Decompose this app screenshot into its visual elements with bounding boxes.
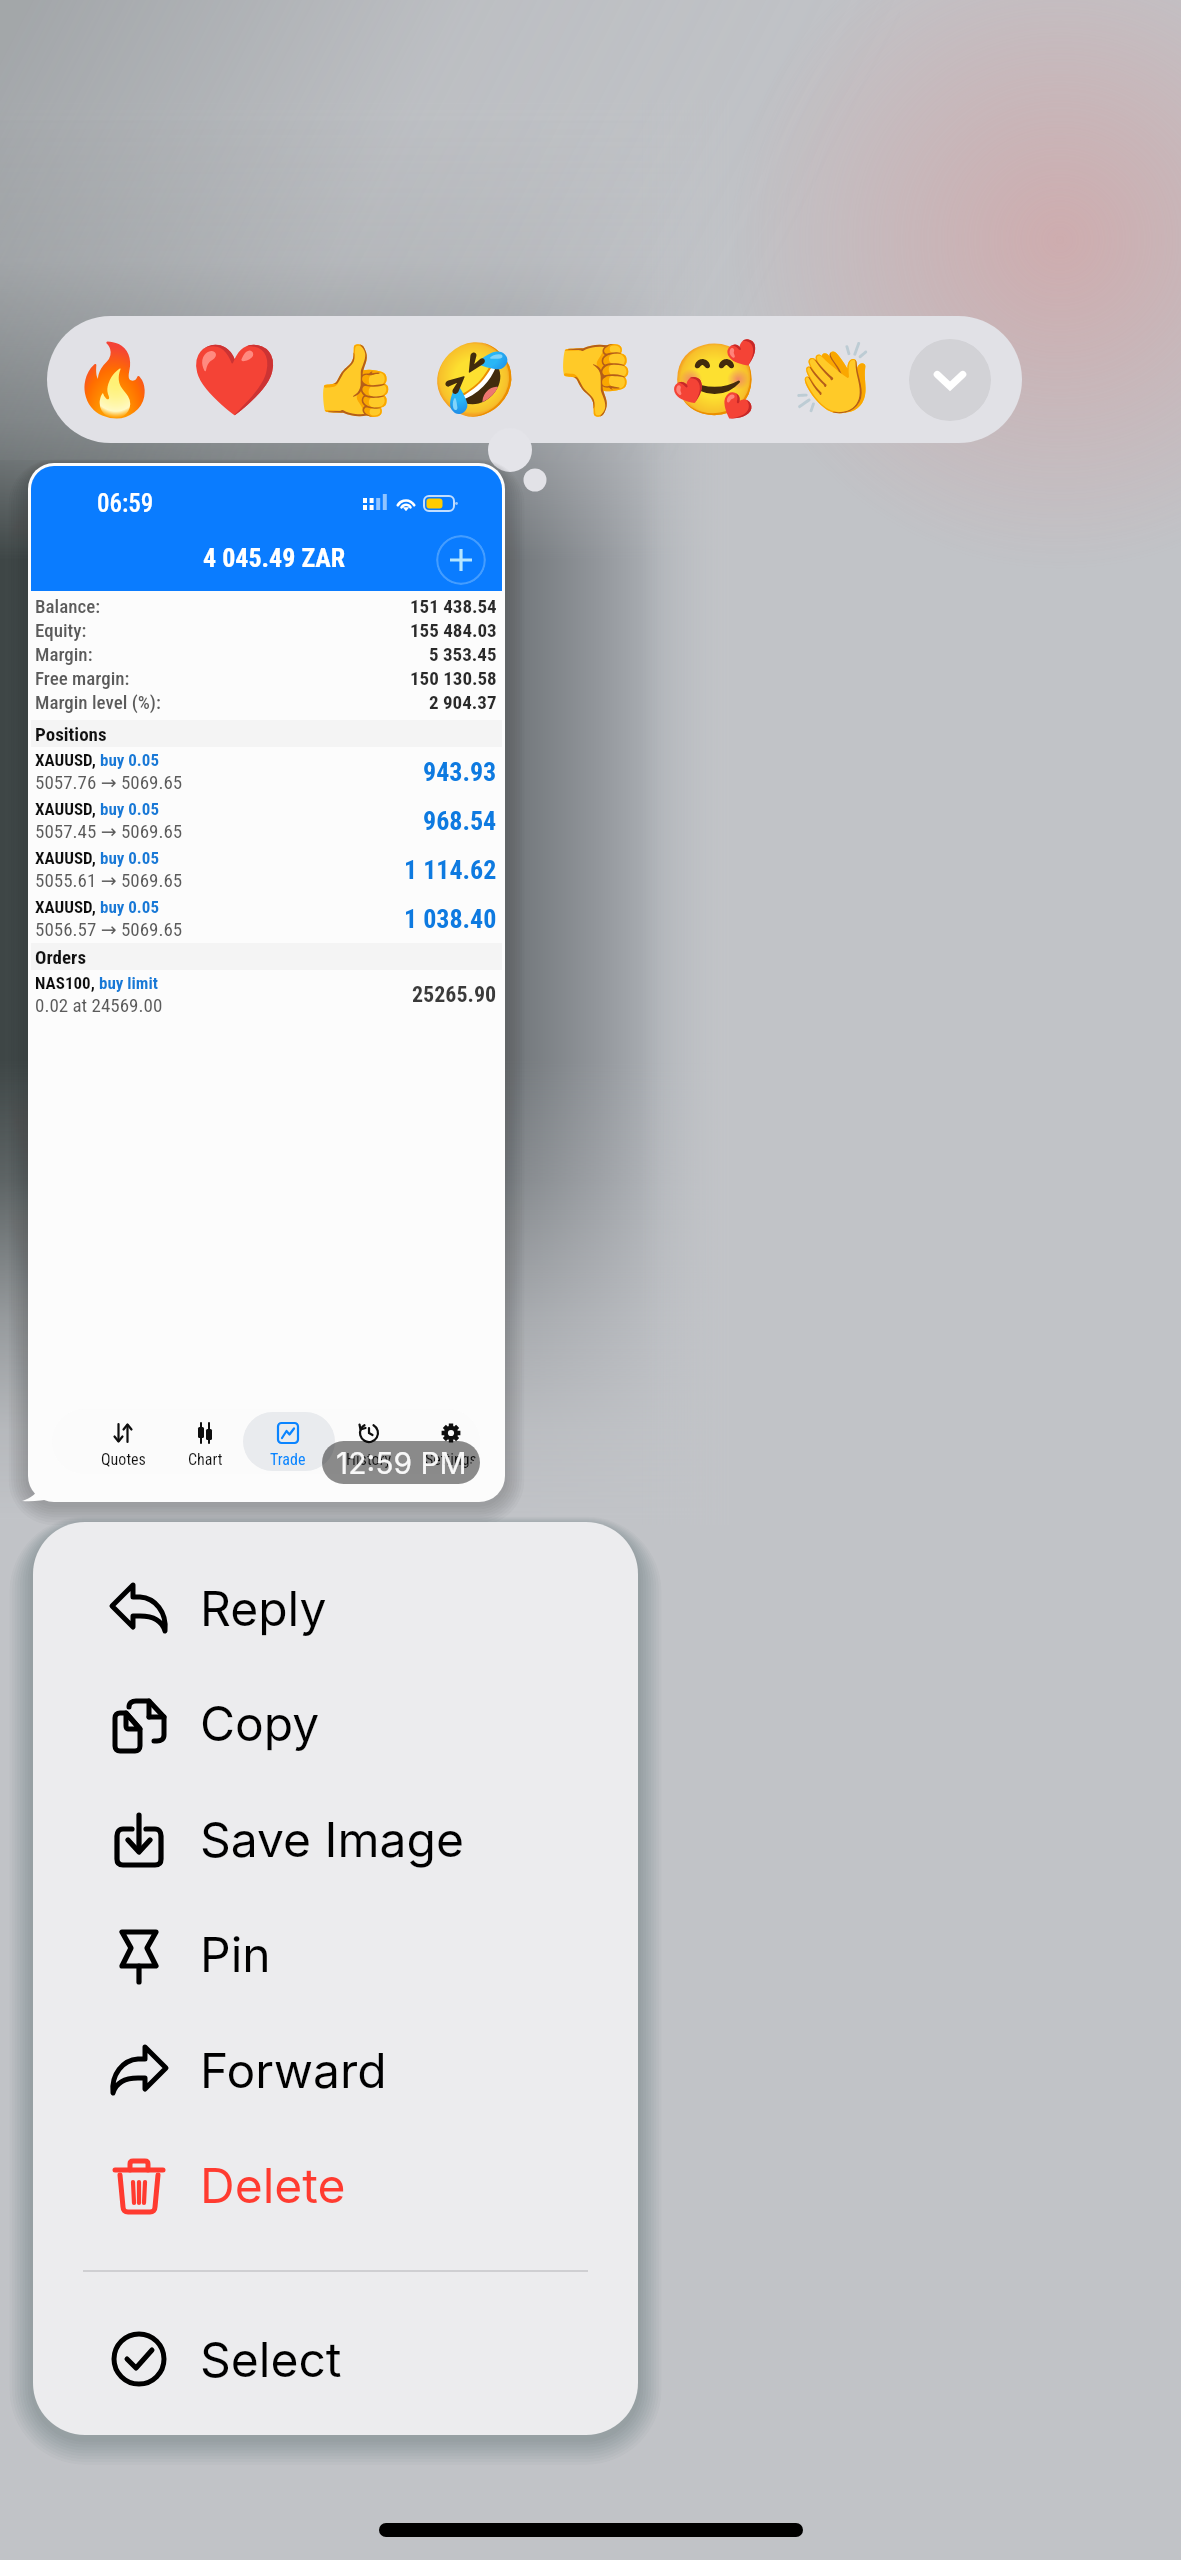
- staticText: Equity:: [35, 619, 87, 641]
- button[interactable]: Pin: [33, 1904, 638, 2004]
- staticText: 25265.90: [412, 982, 497, 1008]
- staticText: 1 038.40: [404, 904, 497, 934]
- staticText: History: [346, 1450, 392, 1469]
- staticText: 🔥: [71, 339, 159, 421]
- button[interactable]: ❤: [189, 334, 281, 426]
- staticText: 12:59 PM: [336, 1445, 467, 1481]
- staticText: 968.54: [423, 806, 497, 836]
- staticText: Margin:: [35, 643, 93, 665]
- staticText: 5057.45 → 5069.65: [35, 820, 183, 842]
- staticText: 5057.76 → 5069.65: [35, 771, 183, 793]
- staticText: XAUUSD,: [35, 750, 96, 770]
- staticText: Positions: [35, 723, 107, 745]
- staticText: Quotes: [101, 1450, 146, 1469]
- staticText: 5055.61 → 5069.65: [35, 869, 183, 891]
- button[interactable]: XAUUSD,: [31, 796, 502, 845]
- button[interactable]: Delete: [33, 2135, 638, 2235]
- button[interactable]: Forward: [33, 2020, 638, 2120]
- staticText: 👎: [551, 339, 639, 421]
- button[interactable]: Close reactions: [909, 339, 991, 421]
- staticText: Pin: [200, 1925, 271, 1983]
- staticText: Trade: [270, 1450, 306, 1469]
- staticText: XAUUSD,: [35, 848, 96, 868]
- button[interactable]: 👍: [309, 334, 401, 426]
- staticText: buy 0.05: [100, 897, 159, 917]
- staticText: 4 045.49 ZAR: [203, 543, 346, 573]
- button[interactable]: Select: [33, 2309, 638, 2409]
- staticText: Save Image: [200, 1810, 464, 1868]
- button[interactable]: 👎: [549, 334, 641, 426]
- staticText: Reply: [200, 1579, 327, 1637]
- staticText: 943.93: [423, 757, 497, 787]
- staticText: NAS100,: [35, 973, 95, 993]
- staticText: buy 0.05: [100, 750, 159, 770]
- staticText: 150 130.58: [410, 667, 497, 689]
- button[interactable]: History: [329, 1412, 409, 1471]
- staticText: Forward: [200, 2041, 387, 2099]
- staticText: 2 904.37: [429, 691, 497, 713]
- button[interactable]: 🤣: [429, 334, 521, 426]
- staticText: 1 114.62: [404, 855, 497, 885]
- button[interactable]: Settings: [411, 1412, 480, 1471]
- staticText: 0.02 at 24569.00: [35, 994, 163, 1016]
- button[interactable]: 🥰: [669, 334, 761, 426]
- button[interactable]: New order: [436, 535, 486, 585]
- button[interactable]: 🔥: [69, 334, 161, 426]
- button[interactable]: XAUUSD,: [31, 747, 502, 796]
- staticText: Margin level (%):: [35, 691, 161, 713]
- button[interactable]: XAUUSD,: [31, 894, 502, 943]
- button[interactable]: Copy: [33, 1673, 638, 1773]
- staticText: 155 484.03: [410, 619, 497, 641]
- button[interactable]: 👏: [789, 334, 881, 426]
- staticText: 151 438.54: [410, 595, 497, 617]
- staticText: Copy: [200, 1694, 320, 1752]
- staticText: 👍: [311, 339, 399, 421]
- staticText: 5 353.45: [429, 643, 497, 665]
- staticText: Free margin:: [35, 667, 130, 689]
- staticText: Balance:: [35, 595, 101, 617]
- staticText: Select: [200, 2330, 342, 2388]
- button[interactable]: 06:59: [28, 463, 505, 1502]
- staticText: Settings: [425, 1450, 477, 1469]
- staticText: buy 0.05: [100, 848, 159, 868]
- button[interactable]: XAUUSD,: [31, 845, 502, 894]
- button[interactable]: Chart: [165, 1412, 245, 1471]
- button[interactable]: NAS100,: [31, 970, 502, 1019]
- button[interactable]: Quotes: [83, 1412, 163, 1471]
- staticText: ❤: [191, 339, 279, 421]
- staticText: Delete: [200, 2156, 346, 2214]
- staticText: 06:59: [97, 489, 154, 518]
- button[interactable]: Trade: [248, 1412, 328, 1471]
- staticText: Chart: [188, 1450, 223, 1469]
- staticText: buy limit: [99, 973, 158, 993]
- staticText: 5056.57 → 5069.65: [35, 918, 183, 940]
- staticText: XAUUSD,: [35, 799, 96, 819]
- button[interactable]: Save Image: [33, 1789, 638, 1889]
- staticText: XAUUSD,: [35, 897, 96, 917]
- staticText: 👏: [791, 339, 879, 421]
- staticText: buy 0.05: [100, 799, 159, 819]
- staticText: 🤣: [431, 339, 519, 421]
- button[interactable]: Reply: [33, 1558, 638, 1658]
- staticText: Orders: [35, 946, 87, 968]
- staticText: 🥰: [671, 339, 759, 421]
